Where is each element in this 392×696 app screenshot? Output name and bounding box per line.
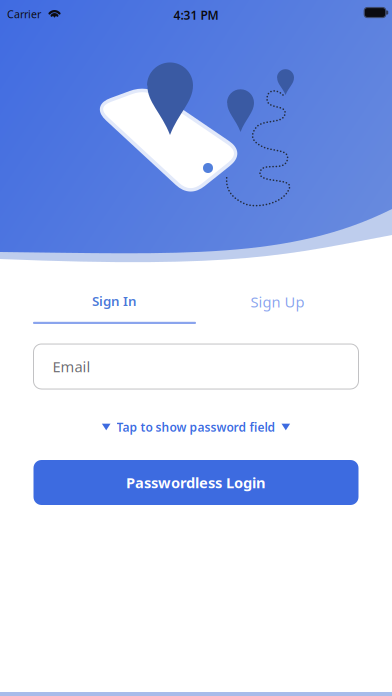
staticText: Sign In [92, 292, 137, 310]
button[interactable]: Tap to show password field [102, 417, 290, 437]
staticText: Carrier [7, 7, 41, 21]
staticText: Email [52, 357, 90, 376]
staticText: Passwordless Login [126, 473, 266, 492]
staticText: Sign Up [250, 292, 304, 311]
staticText: Tap to show password field [116, 419, 275, 435]
button[interactable]: Sign Up [196, 262, 359, 324]
staticText: 4:31 PM [173, 7, 218, 23]
button[interactable]: Passwordless Login [33, 460, 358, 505]
button[interactable]: Sign In [33, 262, 196, 324]
